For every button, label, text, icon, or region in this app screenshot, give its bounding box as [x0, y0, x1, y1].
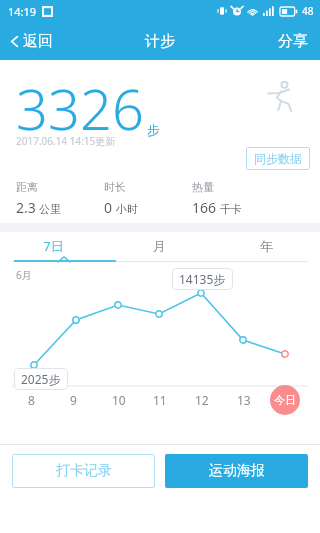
button[interactable]: 今日	[270, 385, 300, 415]
staticText: 距离	[16, 180, 38, 194]
staticText: 2.3	[16, 198, 36, 217]
staticText: 9	[70, 392, 77, 408]
staticText: 千卡	[220, 202, 242, 216]
staticText: 返回	[23, 32, 53, 51]
staticText: 月	[153, 238, 166, 254]
staticText: 运动海报	[209, 462, 265, 480]
staticText: 公里	[39, 202, 61, 216]
staticText: 6月	[16, 268, 32, 282]
staticText: 年	[260, 238, 273, 254]
staticText: 48	[302, 4, 314, 18]
button[interactable]: 打卡记录	[12, 454, 155, 488]
staticText: 11	[153, 392, 167, 408]
staticText: 166	[192, 198, 217, 217]
button[interactable]: 月	[106, 232, 213, 260]
staticText: 14:19	[8, 4, 37, 19]
staticText: 12	[195, 392, 209, 408]
button[interactable]: 分享	[266, 26, 320, 57]
button[interactable]: 年	[213, 232, 320, 260]
staticText: 14135步	[179, 271, 226, 287]
staticText: 步	[147, 122, 160, 138]
staticText: 10	[112, 392, 126, 408]
staticText: 打卡记录	[56, 462, 112, 480]
staticText: 小时	[116, 202, 138, 216]
button[interactable]: 同步数据	[246, 147, 310, 170]
button[interactable]: 7日	[0, 232, 106, 260]
staticText: 13	[237, 392, 251, 408]
staticText: 8	[28, 392, 35, 408]
staticText: 3326	[16, 70, 144, 146]
staticText: 今日	[274, 393, 296, 407]
staticText: 时长	[104, 180, 126, 194]
button[interactable]: 运动海报	[165, 454, 308, 488]
staticText: 7日	[43, 237, 64, 255]
staticText: 热量	[192, 180, 214, 194]
staticText: 同步数据	[254, 151, 302, 166]
button[interactable]: 返回	[0, 28, 63, 55]
staticText: 2017.06.14 14:15更新	[16, 134, 116, 148]
staticText: 计步	[145, 32, 175, 51]
staticText: 0	[104, 198, 113, 217]
staticText: 2025步	[21, 371, 61, 387]
